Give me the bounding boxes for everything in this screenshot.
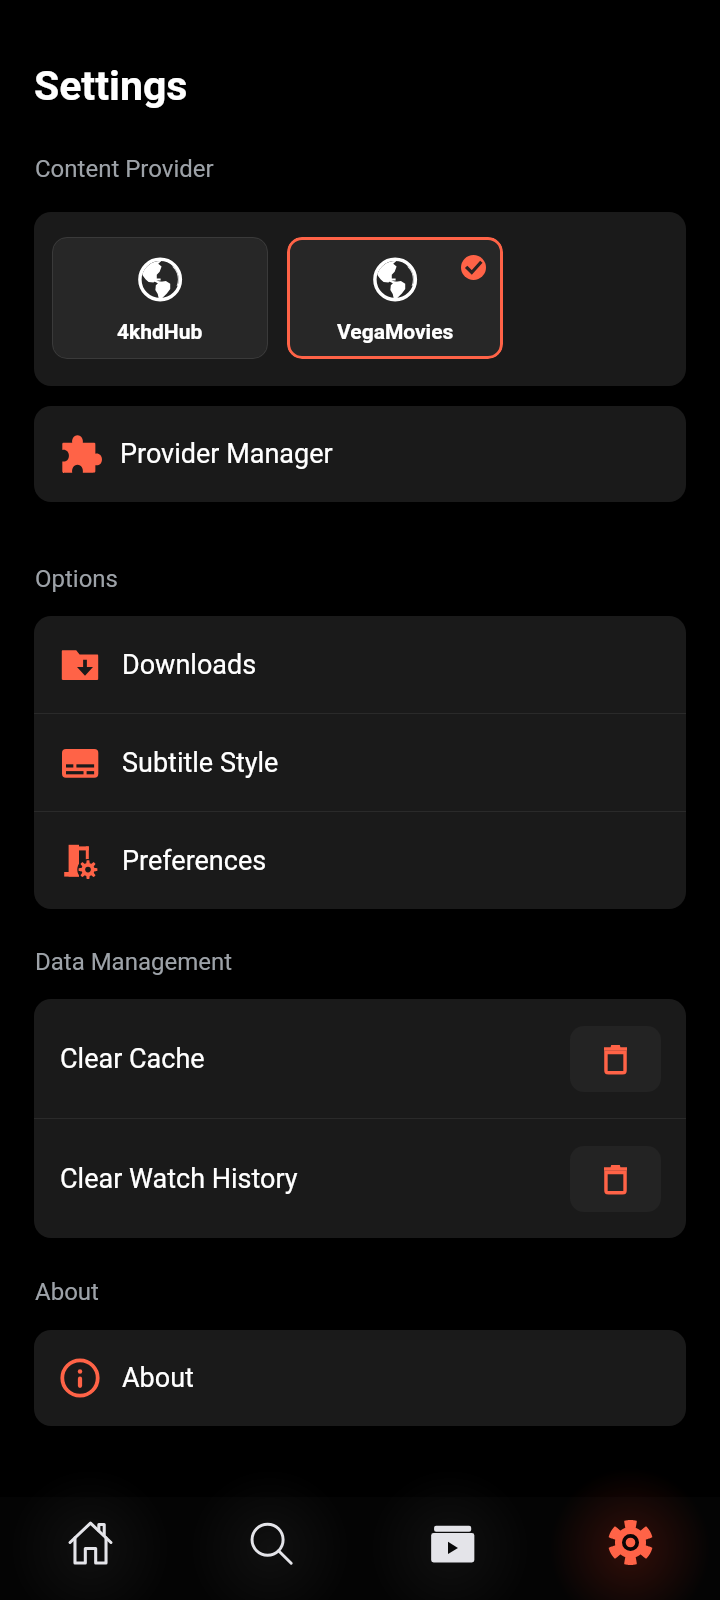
staticText: About xyxy=(35,1278,99,1306)
button[interactable]: Library xyxy=(360,1497,540,1600)
staticText: Subtitle Style xyxy=(122,747,279,779)
button[interactable]: About xyxy=(34,1330,686,1426)
staticText: 4khdHub xyxy=(117,320,203,345)
button[interactable]: Delete xyxy=(570,1146,661,1212)
staticText: Clear Cache xyxy=(60,1043,570,1075)
staticText: Options xyxy=(35,565,119,593)
button[interactable]: Downloads xyxy=(34,616,686,713)
staticText: Data Management xyxy=(35,948,233,976)
button[interactable]: Provider Manager xyxy=(34,406,686,502)
button[interactable]: Preferences xyxy=(34,812,686,909)
button[interactable]: Subtitle Style xyxy=(34,714,686,811)
staticText: Clear Watch History xyxy=(60,1163,570,1195)
staticText: VegaMovies xyxy=(337,320,454,345)
button[interactable]: Search xyxy=(180,1497,360,1600)
staticText: Preferences xyxy=(122,845,267,877)
button[interactable]: Home xyxy=(0,1497,180,1600)
staticText: Downloads xyxy=(122,649,257,681)
staticText: Content Provider xyxy=(35,155,214,183)
staticText: Provider Manager xyxy=(120,438,333,470)
button[interactable]: 4khdHub xyxy=(52,237,268,359)
button[interactable]: Delete xyxy=(570,1026,661,1092)
button[interactable]: VegaMovies xyxy=(287,237,503,359)
staticText: About xyxy=(122,1362,194,1394)
staticText: Settings xyxy=(34,62,188,110)
button[interactable]: Settings xyxy=(540,1497,720,1600)
